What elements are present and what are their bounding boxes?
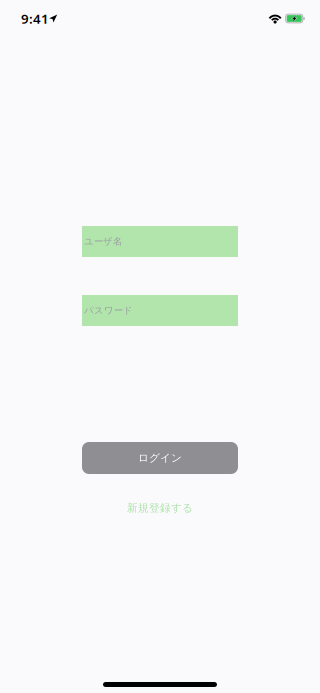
button[interactable]: ユーザ名 xyxy=(82,226,238,257)
button[interactable]: パスワード xyxy=(82,295,238,326)
staticText: 新規登録する xyxy=(127,501,193,514)
staticText: 9:41 xyxy=(21,10,49,27)
button[interactable]: 新規登録する xyxy=(127,502,193,514)
staticText: パスワード xyxy=(84,305,133,316)
staticText: ユーザ名 xyxy=(84,236,122,247)
button[interactable]: ログイン xyxy=(82,442,238,474)
staticText: ログイン xyxy=(138,451,182,464)
